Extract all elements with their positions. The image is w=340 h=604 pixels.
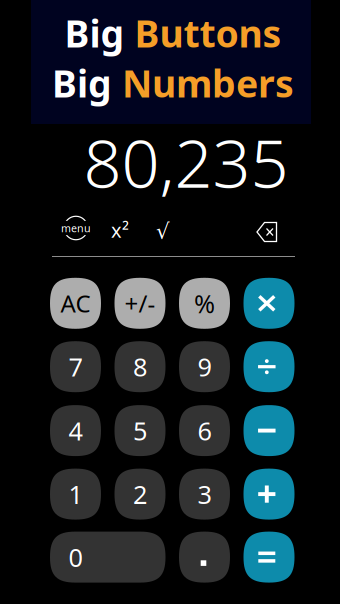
button[interactable]: Square	[104, 215, 136, 245]
button[interactable]: 9	[179, 341, 230, 392]
button[interactable]: Divide	[243, 341, 294, 392]
button[interactable]: 7	[50, 341, 101, 392]
staticText: 5	[133, 414, 147, 447]
button[interactable]: Square root	[149, 216, 177, 246]
staticText: Big	[64, 8, 134, 58]
staticText: x²	[111, 217, 129, 243]
button[interactable]: 5	[114, 405, 165, 456]
staticText: 80,235	[83, 118, 288, 206]
staticText: Numbers	[122, 58, 294, 108]
button[interactable]: Multiply	[243, 278, 294, 329]
staticText: 4	[68, 414, 82, 447]
button[interactable]: 8	[114, 341, 165, 392]
staticText: +/-	[124, 287, 155, 319]
button[interactable]: 0	[50, 532, 165, 583]
staticText: AC	[60, 287, 90, 319]
staticText: menu	[61, 221, 91, 235]
button[interactable]: 1	[50, 469, 101, 520]
staticText: 3	[197, 477, 211, 511]
staticText: 9	[197, 350, 211, 383]
staticText: 1	[68, 477, 82, 511]
staticText: √	[156, 219, 170, 243]
button[interactable]: Menu	[59, 213, 93, 243]
button[interactable]: AC	[50, 278, 101, 329]
button[interactable]: Delete	[252, 219, 282, 245]
button[interactable]: 4	[50, 405, 101, 456]
staticText: 0	[68, 540, 82, 574]
button[interactable]: 3	[179, 469, 230, 520]
button[interactable]: Equals	[243, 532, 294, 583]
staticText: %	[194, 286, 215, 320]
staticText: 2	[133, 477, 147, 511]
staticText: Buttons	[134, 8, 281, 58]
staticText: 7	[68, 350, 82, 383]
button[interactable]: Minus	[243, 405, 294, 456]
staticText: 8	[133, 350, 147, 383]
button[interactable]: +/-	[114, 278, 165, 329]
button[interactable]: Decimal point	[179, 532, 230, 583]
button[interactable]: 2	[114, 469, 165, 520]
button[interactable]: Plus	[243, 469, 294, 520]
button[interactable]: %	[179, 278, 230, 329]
staticText: 6	[197, 414, 211, 447]
button[interactable]: 6	[179, 405, 230, 456]
staticText: Big	[52, 58, 122, 108]
